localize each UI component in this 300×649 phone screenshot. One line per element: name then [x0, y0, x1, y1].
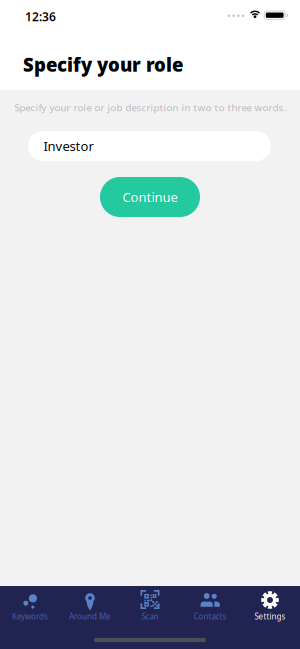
button[interactable]: Around Me — [60, 586, 120, 628]
staticText: Specify your role — [23, 52, 183, 77]
button[interactable]: Continue — [100, 177, 200, 217]
button[interactable]: Keywords — [0, 586, 60, 628]
staticText: Keywords — [12, 611, 48, 622]
staticText: Continue — [122, 188, 177, 206]
button[interactable]: Scan — [120, 586, 180, 628]
staticText: Investor — [43, 137, 93, 155]
staticText: 12:36 — [25, 8, 56, 24]
button[interactable]: Settings — [240, 586, 300, 628]
staticText: Specify your role or job description in … — [14, 101, 286, 114]
button[interactable]: Contacts — [180, 586, 240, 628]
staticText: Around Me — [69, 611, 111, 622]
staticText: Scan — [141, 611, 158, 622]
staticText: Settings — [254, 611, 285, 622]
button[interactable]: Investor — [28, 131, 271, 161]
staticText: Contacts — [193, 611, 226, 622]
